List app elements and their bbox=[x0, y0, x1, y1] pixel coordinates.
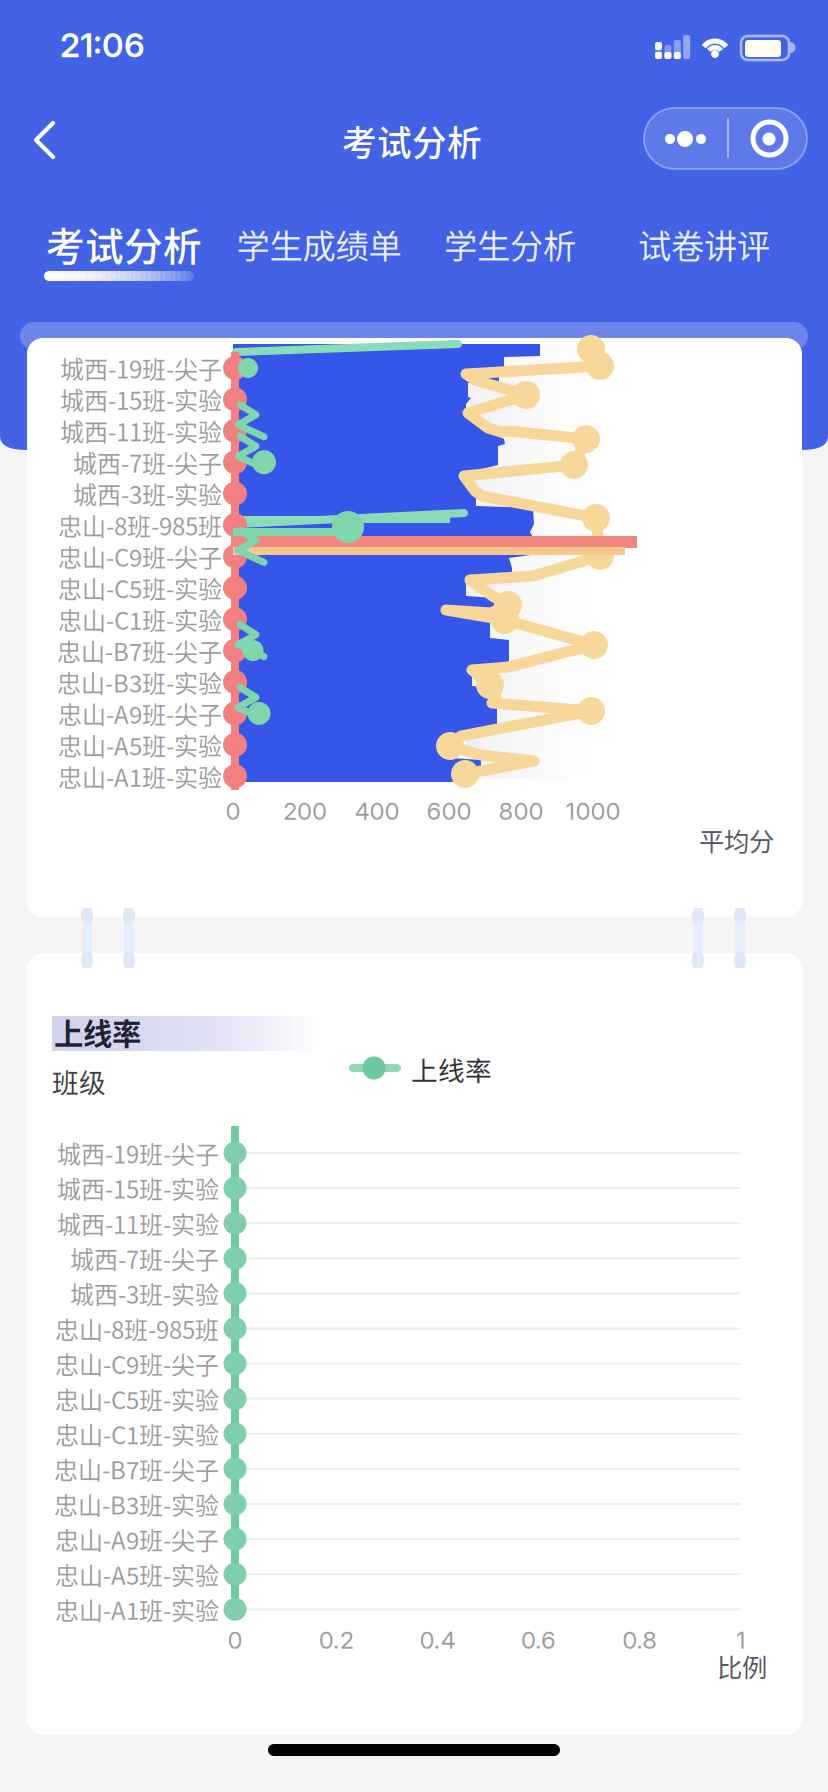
staticText: 城西-7班-尖子 bbox=[73, 445, 222, 480]
staticText: 城西-11班-实验 bbox=[57, 1206, 219, 1241]
staticText: 忠山-C1班-实验 bbox=[55, 1416, 219, 1451]
staticText: 忠山-A5班-实验 bbox=[58, 727, 222, 762]
button[interactable]: 学生成绩单 bbox=[219, 202, 419, 298]
staticText: 800 bbox=[498, 796, 543, 825]
staticText: 忠山-A5班-实验 bbox=[55, 1557, 219, 1592]
staticText: 0 bbox=[227, 1625, 242, 1654]
staticText: 考试分析 bbox=[46, 216, 202, 272]
staticText: 忠山-B3班-实验 bbox=[54, 1487, 219, 1521]
staticText: 城西-11班-实验 bbox=[60, 413, 222, 448]
staticText: 忠山-C9班-尖子 bbox=[58, 539, 222, 574]
button[interactable]: 返回 bbox=[12, 96, 108, 180]
staticText: 上线率 bbox=[54, 1011, 141, 1053]
staticText: 1 bbox=[736, 1625, 746, 1654]
staticText: 0.4 bbox=[419, 1625, 455, 1654]
staticText: 忠山-C9班-尖子 bbox=[55, 1346, 219, 1381]
button[interactable]: 考试分析 bbox=[28, 202, 220, 298]
staticText: 班级 bbox=[52, 1062, 106, 1100]
button[interactable]: 关闭 bbox=[727, 108, 807, 169]
staticText: 学生成绩单 bbox=[236, 220, 401, 268]
staticText: 平均分 bbox=[699, 822, 774, 858]
button[interactable]: 更多 bbox=[644, 108, 727, 169]
staticText: 忠山-C5班-实验 bbox=[58, 570, 222, 605]
staticText: 忠山-A1班-实验 bbox=[55, 1592, 219, 1627]
staticText: 城西-3班-实验 bbox=[70, 1276, 219, 1311]
staticText: 0.6 bbox=[521, 1625, 556, 1654]
staticText: 试卷讲评 bbox=[638, 220, 770, 268]
staticText: 0.2 bbox=[319, 1625, 354, 1654]
staticText: 忠山-B7班-尖子 bbox=[57, 633, 222, 668]
staticText: 600 bbox=[426, 796, 471, 825]
staticText: 21:06 bbox=[60, 25, 145, 65]
staticText: 忠山-B7班-尖子 bbox=[54, 1451, 219, 1486]
staticText: 忠山-B3班-实验 bbox=[57, 665, 222, 699]
staticText: 城西-19班-尖子 bbox=[60, 351, 222, 385]
staticText: 忠山-A9班-尖子 bbox=[58, 696, 222, 731]
staticText: 忠山-8班-985班 bbox=[58, 508, 222, 542]
staticText: 城西-3班-实验 bbox=[73, 476, 222, 511]
button[interactable]: 学生分析 bbox=[420, 202, 600, 298]
staticText: 城西-15班-实验 bbox=[57, 1171, 219, 1205]
staticText: 学生分析 bbox=[444, 220, 576, 268]
staticText: 忠山-C1班-实验 bbox=[58, 602, 222, 637]
staticText: 1000 bbox=[565, 796, 620, 825]
staticText: 忠山-A9班-尖子 bbox=[55, 1522, 219, 1556]
staticText: 城西-7班-尖子 bbox=[70, 1241, 219, 1276]
staticText: 忠山-A1班-实验 bbox=[58, 759, 222, 794]
staticText: 城西-19班-尖子 bbox=[57, 1136, 219, 1170]
staticText: 0 bbox=[225, 796, 240, 825]
staticText: 忠山-C5班-实验 bbox=[55, 1381, 219, 1416]
staticText: 400 bbox=[354, 796, 399, 825]
staticText: 0.8 bbox=[622, 1625, 657, 1654]
staticText: 比例 bbox=[717, 1648, 767, 1684]
staticText: 考试分析 bbox=[342, 116, 482, 166]
staticText: 上线率 bbox=[411, 1050, 492, 1088]
staticText: 城西-15班-实验 bbox=[60, 382, 222, 417]
button[interactable]: 试卷讲评 bbox=[614, 202, 794, 298]
staticText: 忠山-8班-985班 bbox=[55, 1311, 219, 1346]
staticText: 200 bbox=[283, 796, 327, 825]
